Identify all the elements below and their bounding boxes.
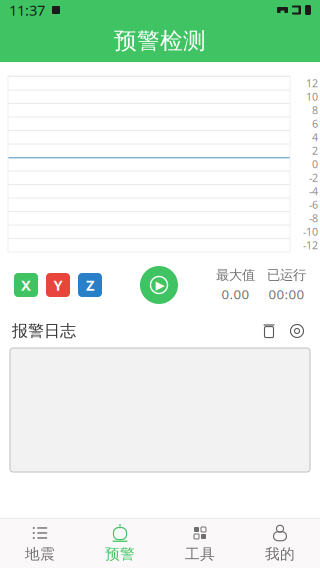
staticText: ▶ (155, 278, 164, 292)
staticText: 报警日志 (12, 321, 76, 341)
staticText: -12 (303, 238, 318, 252)
button[interactable]: Z (78, 273, 102, 297)
staticText: 0.00 (221, 285, 249, 303)
button[interactable]: 地震 (0, 519, 80, 568)
staticText: 最大值 (216, 267, 255, 283)
staticText: 已运行 (267, 267, 306, 283)
staticText: 预警检测 (114, 27, 206, 55)
staticText: Y (53, 275, 62, 295)
staticText: -4 (309, 184, 318, 198)
button[interactable]: X (14, 273, 38, 297)
button[interactable]: 我的 (240, 519, 320, 568)
staticText: -8 (309, 211, 318, 225)
staticText: 11:37 (9, 0, 45, 20)
staticText: 地震 (25, 545, 55, 563)
staticText: X (21, 275, 31, 295)
staticText: 0 (312, 157, 318, 171)
button[interactable]: 工具 (160, 519, 240, 568)
staticText: 8 (312, 103, 318, 117)
staticText: 我的 (265, 545, 295, 563)
staticText: 预警 (105, 545, 135, 563)
staticText: 6 (312, 116, 318, 131)
staticText: 工具 (185, 545, 215, 563)
staticText: Z (86, 275, 94, 295)
staticText: -2 (309, 170, 318, 185)
staticText: 10 (306, 89, 318, 104)
button[interactable]: Y (46, 273, 70, 297)
staticText: -6 (309, 197, 318, 212)
button[interactable]: 设置 (282, 320, 312, 342)
button[interactable]: 预警 (80, 519, 160, 568)
staticText: 4 (312, 130, 318, 144)
staticText: 2 (312, 143, 318, 158)
staticText: 12 (306, 76, 318, 90)
button[interactable]: 开始检测 (138, 264, 180, 306)
button[interactable]: 清空日志 (256, 320, 282, 342)
staticText: -10 (303, 224, 318, 239)
staticText: 00:00 (268, 285, 304, 303)
